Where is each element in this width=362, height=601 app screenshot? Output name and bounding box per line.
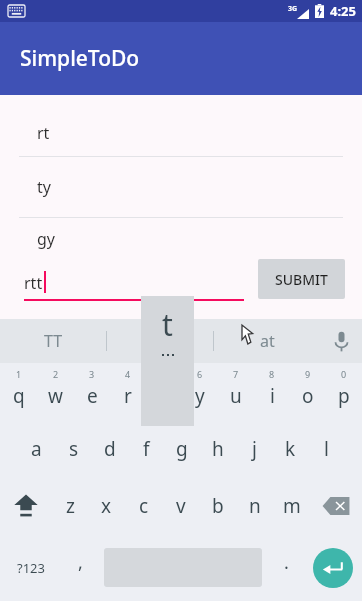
staticText: w: [48, 383, 63, 409]
button[interactable]: Voice input: [320, 319, 362, 363]
staticText: h: [212, 436, 224, 462]
button[interactable]: c: [125, 477, 162, 534]
button[interactable]: .: [268, 534, 304, 601]
button[interactable]: 8: [254, 363, 290, 420]
staticText: l: [324, 436, 329, 462]
staticText: t: [162, 304, 173, 345]
staticText: c: [139, 493, 149, 519]
button[interactable]: z: [52, 477, 88, 534]
button[interactable]: gy: [0, 218, 362, 255]
staticText: k: [285, 436, 296, 462]
button[interactable]: b: [199, 477, 236, 534]
staticText: SimpleToDo: [20, 44, 140, 73]
button[interactable]: f: [128, 420, 164, 477]
staticText: m: [283, 493, 301, 519]
button[interactable]: a: [18, 420, 55, 477]
staticText: z: [66, 493, 75, 519]
button[interactable]: 2: [37, 363, 74, 420]
staticText: d: [104, 436, 116, 462]
staticText: .: [284, 550, 289, 575]
staticText: u: [230, 383, 242, 409]
staticText: 4:25: [330, 2, 356, 20]
staticText: at: [260, 330, 275, 352]
staticText: ty: [37, 176, 51, 198]
button[interactable]: k: [272, 420, 308, 477]
button[interactable]: t: [107, 319, 213, 363]
button[interactable]: 7: [218, 363, 254, 420]
staticText: y: [195, 383, 205, 409]
staticText: r: [124, 383, 132, 409]
button[interactable]: Enter: [304, 534, 362, 601]
button[interactable]: ,: [62, 534, 98, 601]
staticText: 4: [125, 368, 131, 380]
button[interactable]: Backspace: [310, 477, 362, 534]
button[interactable]: 0: [326, 363, 362, 420]
button[interactable]: SUBMIT: [258, 259, 345, 299]
staticText: rtt: [24, 272, 43, 294]
staticText: gy: [37, 228, 56, 250]
staticText: 2: [53, 368, 59, 380]
staticText: 3: [89, 368, 95, 380]
staticText: 7: [233, 368, 239, 380]
staticText: s: [69, 436, 79, 462]
button[interactable]: TT: [0, 319, 106, 363]
button[interactable]: s: [55, 420, 92, 477]
button[interactable]: 1: [0, 363, 37, 420]
staticText: 1: [16, 368, 22, 380]
button[interactable]: d: [92, 420, 128, 477]
staticText: f: [143, 436, 150, 462]
button[interactable]: j: [236, 420, 272, 477]
button[interactable]: at: [214, 319, 320, 363]
staticText: a: [31, 436, 42, 462]
staticText: rt: [37, 122, 50, 144]
button[interactable]: h: [200, 420, 236, 477]
button[interactable]: x: [88, 477, 125, 534]
button[interactable]: 3: [74, 363, 110, 420]
staticText: j: [252, 436, 257, 462]
staticText: ?123: [17, 559, 45, 577]
staticText: v: [176, 493, 186, 519]
staticText: g: [176, 436, 188, 462]
staticText: i: [270, 383, 275, 409]
other: Keyboard active: [8, 5, 25, 17]
staticText: b: [212, 493, 224, 519]
staticText: e: [87, 383, 98, 409]
staticText: 6: [197, 368, 203, 380]
button[interactable]: 4: [110, 363, 146, 420]
staticText: ,: [78, 550, 83, 575]
button[interactable]: rt: [0, 109, 362, 156]
staticText: 9: [305, 368, 311, 380]
staticText: p: [338, 383, 350, 409]
staticText: 8: [269, 368, 275, 380]
button[interactable]: v: [162, 477, 199, 534]
staticText: x: [101, 493, 112, 519]
staticText: TT: [44, 330, 63, 352]
staticText: n: [249, 493, 261, 519]
button[interactable]: l: [308, 420, 344, 477]
button[interactable]: g: [164, 420, 200, 477]
button[interactable]: n: [236, 477, 273, 534]
staticText: o: [302, 383, 314, 409]
staticText: q: [13, 383, 25, 409]
staticText: 3G: [288, 4, 298, 14]
staticText: 0: [341, 368, 347, 380]
button[interactable]: rtt: [24, 257, 244, 301]
staticText: SUBMIT: [275, 270, 328, 289]
button[interactable]: ?123: [0, 534, 62, 601]
button[interactable]: m: [273, 477, 310, 534]
button[interactable]: ty: [0, 157, 362, 217]
button[interactable]: 6: [182, 363, 218, 420]
button[interactable]: 9: [290, 363, 326, 420]
button[interactable]: Shift: [0, 477, 52, 534]
